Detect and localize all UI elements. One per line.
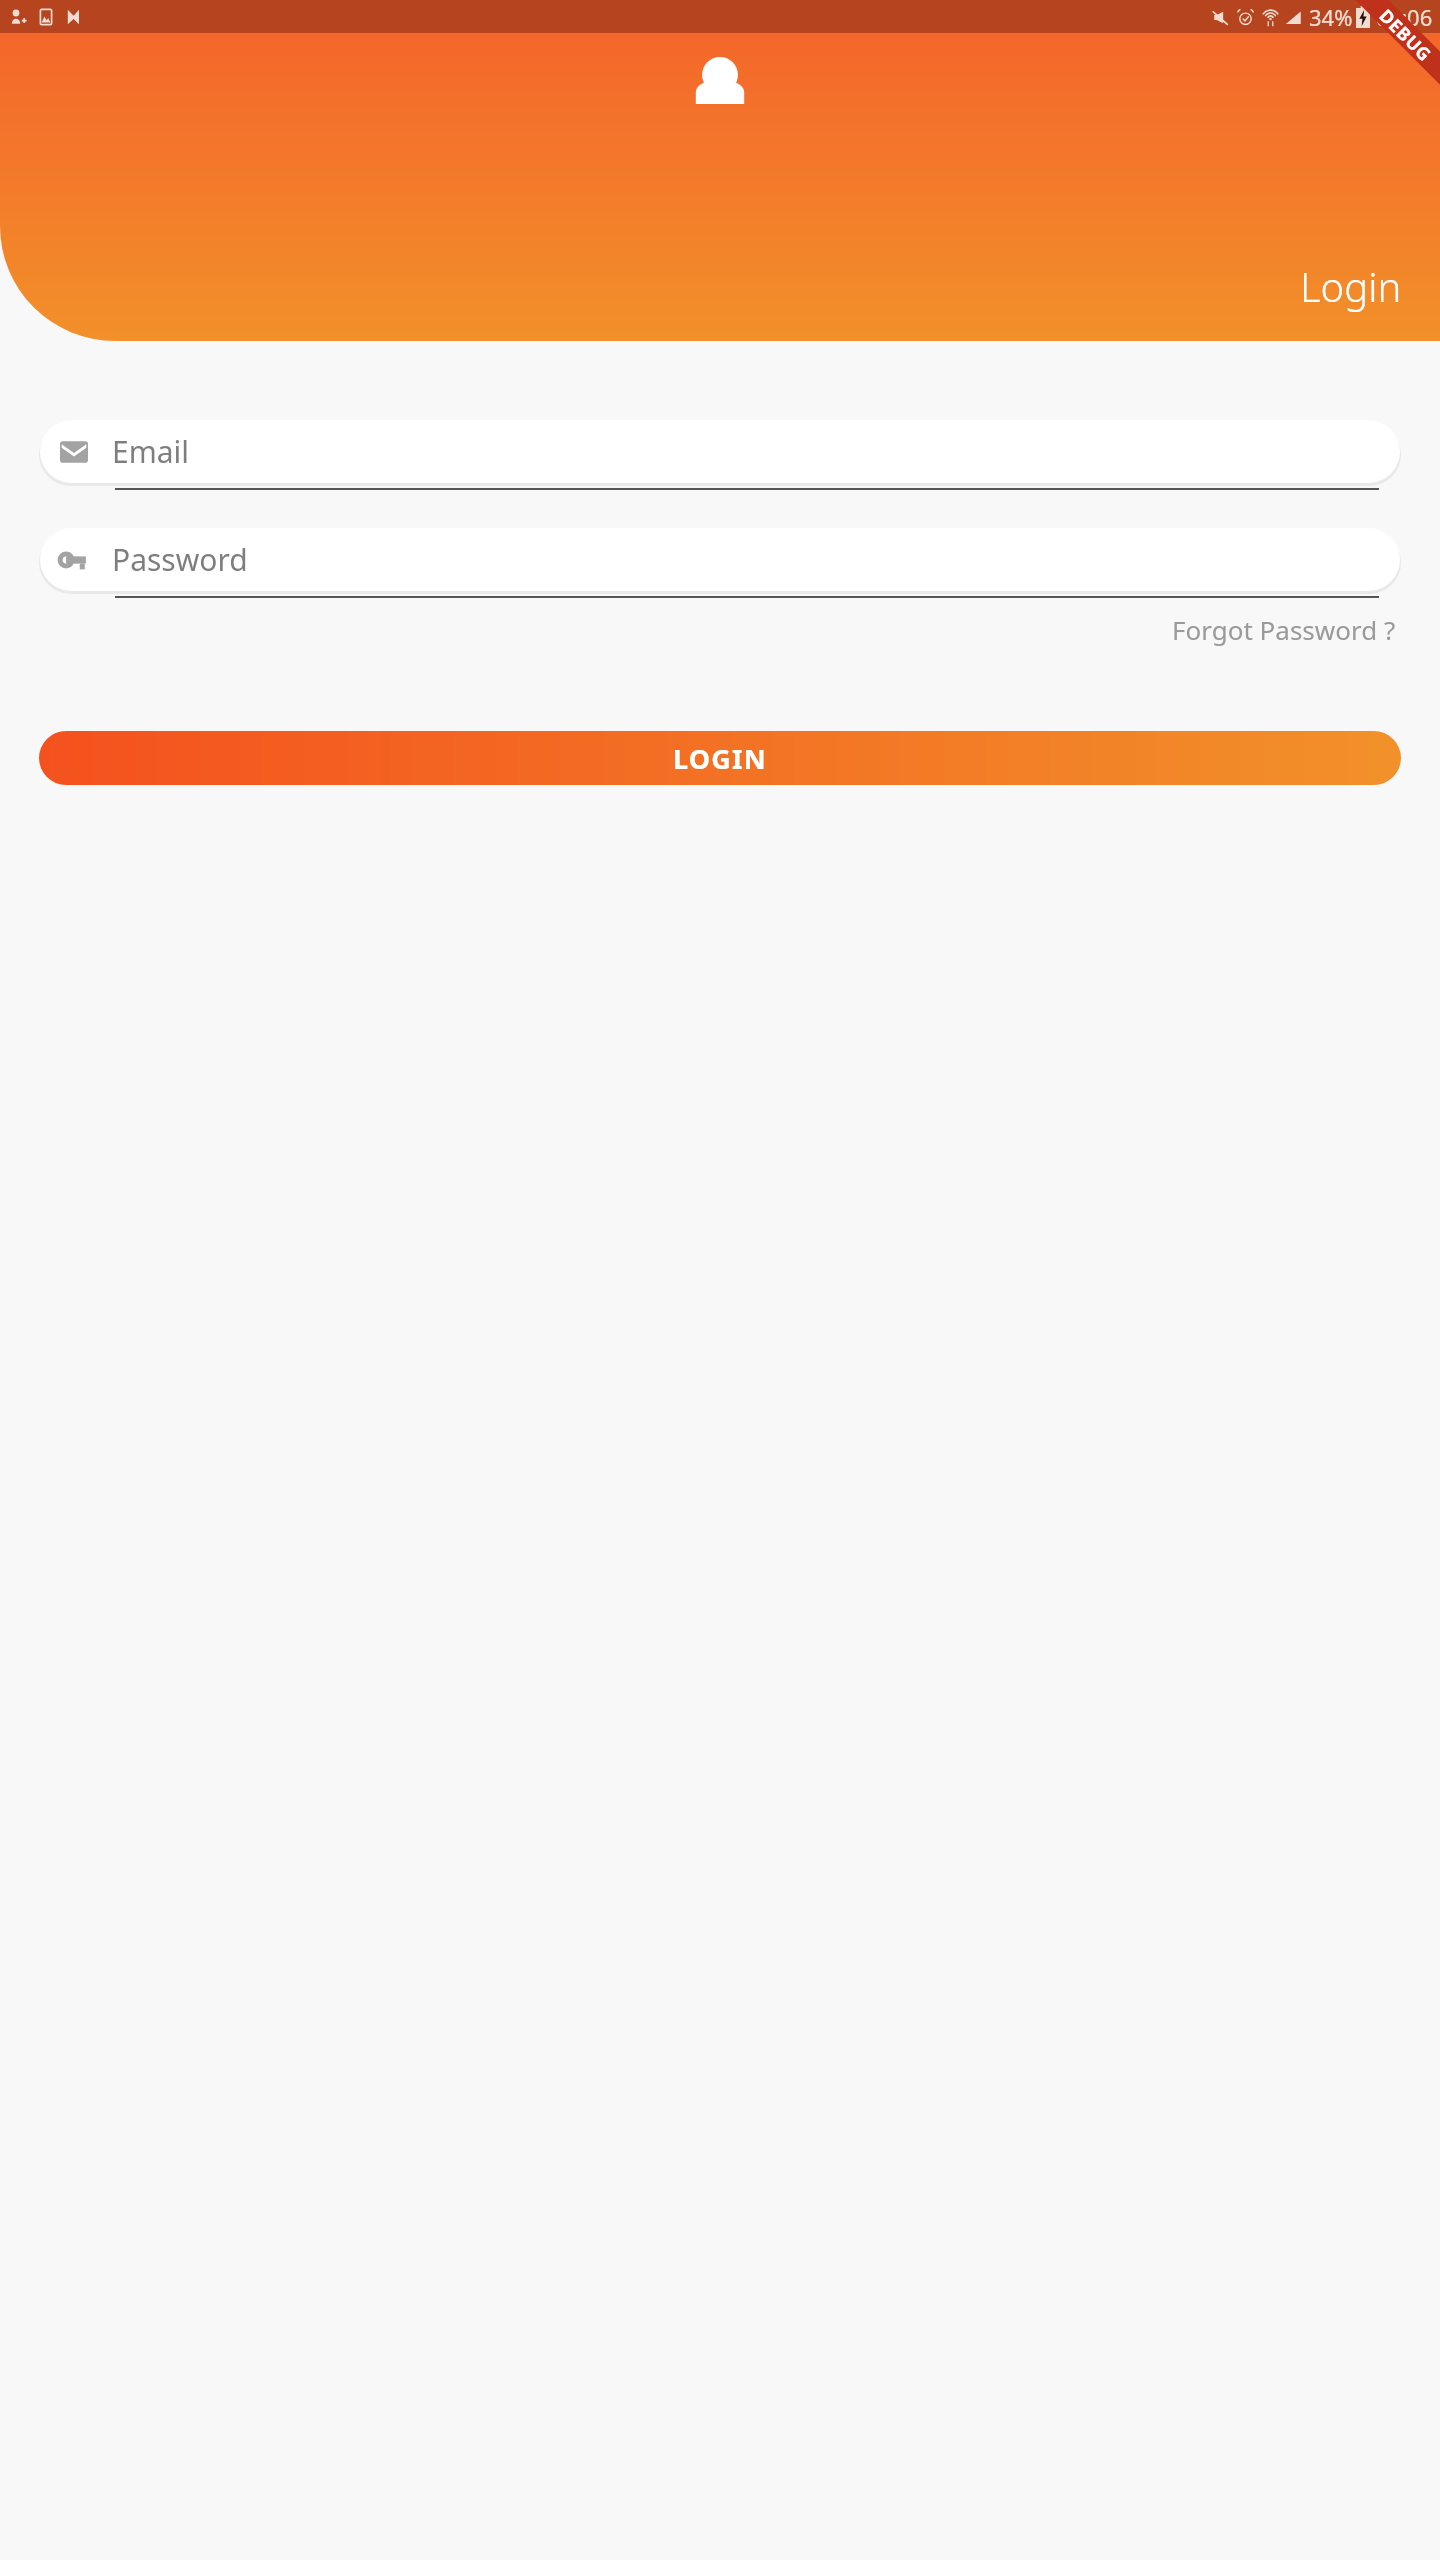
other: Password <box>56 542 92 578</box>
staticText: 03:06 <box>1376 2 1433 32</box>
button[interactable]: Forgot Password ? <box>1166 606 1402 653</box>
button[interactable]: Login <box>1292 255 1410 317</box>
staticText: Email <box>112 431 190 472</box>
button[interactable]: LOGIN <box>39 731 1401 785</box>
staticText: DEBUG <box>1374 4 1437 67</box>
staticText: 34% <box>1309 2 1353 32</box>
button[interactable]: Email <box>0 420 1440 490</box>
button[interactable]: Password <box>0 528 1440 598</box>
staticText: LOGIN <box>673 740 767 777</box>
staticText: Password <box>112 539 248 580</box>
staticText: Forgot Password ? <box>1172 612 1396 647</box>
other: Email <box>56 434 92 470</box>
staticText: Login <box>1300 259 1402 313</box>
